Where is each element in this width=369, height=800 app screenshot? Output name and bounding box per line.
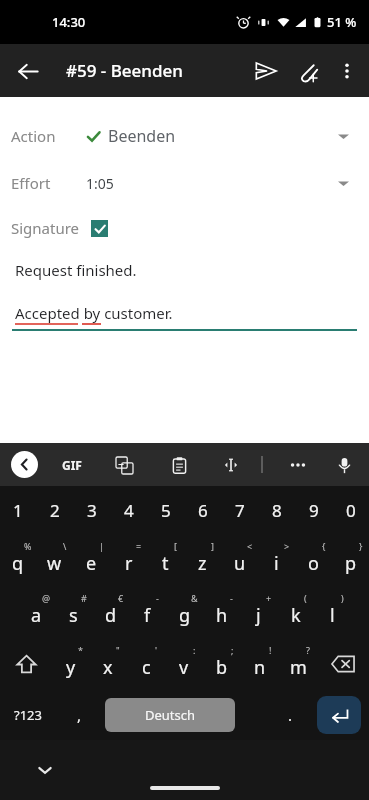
staticText: ( xyxy=(304,592,307,604)
button[interactable]: 5 xyxy=(147,486,184,534)
button[interactable]: t xyxy=(147,534,184,586)
staticText: z xyxy=(198,551,207,576)
staticText: p xyxy=(345,551,357,576)
button[interactable]: Backspace xyxy=(317,638,369,690)
staticText: 14:30 xyxy=(52,13,86,31)
button[interactable]: g xyxy=(166,586,203,638)
staticText: j xyxy=(256,603,261,628)
button[interactable]: Deutsch xyxy=(105,698,235,732)
button[interactable]: Text editing xyxy=(219,453,243,477)
button[interactable]: Voice input xyxy=(331,452,357,478)
button[interactable]: Shift xyxy=(0,638,52,690)
staticText: t xyxy=(162,551,169,576)
staticText: | xyxy=(99,540,104,552)
button[interactable]: p xyxy=(332,534,369,586)
button[interactable]: h xyxy=(203,586,240,638)
staticText: Action xyxy=(11,126,56,146)
button[interactable]: f xyxy=(129,586,166,638)
button[interactable]: b xyxy=(203,638,241,690)
button[interactable]: r xyxy=(110,534,147,586)
button[interactable]: Signature xyxy=(0,210,369,246)
button[interactable]: u xyxy=(221,534,258,586)
staticText: 2 xyxy=(50,499,60,522)
button[interactable]: z xyxy=(184,534,221,586)
staticText: [ xyxy=(174,540,177,552)
button[interactable]: c xyxy=(127,638,165,690)
staticText: < xyxy=(247,540,253,552)
staticText: b xyxy=(216,655,228,680)
button[interactable]: 4 xyxy=(110,486,147,534)
button[interactable]: Clipboard xyxy=(167,453,191,477)
staticText: @ xyxy=(42,592,51,604)
button[interactable]: 7 xyxy=(221,486,258,534)
staticText: . xyxy=(288,705,293,725)
button[interactable]: 6 xyxy=(184,486,221,534)
button[interactable]: m xyxy=(279,638,317,690)
button[interactable]: 1 xyxy=(0,486,36,534)
button[interactable]: Accepted by customer. xyxy=(0,296,369,330)
button[interactable]: q xyxy=(0,534,36,586)
button[interactable]: Effort xyxy=(0,162,369,204)
button[interactable]: d xyxy=(92,586,129,638)
staticText: % xyxy=(24,540,32,552)
staticText: Beenden xyxy=(108,125,176,147)
staticText: y xyxy=(66,655,76,680)
button[interactable]: y xyxy=(52,638,89,690)
button[interactable]: j xyxy=(240,586,277,638)
staticText: = xyxy=(136,540,142,552)
button[interactable]: o xyxy=(295,534,332,586)
staticText: 4 xyxy=(124,499,134,522)
button[interactable]: 2 xyxy=(36,486,73,534)
button[interactable]: i xyxy=(258,534,295,586)
staticText: ] xyxy=(211,540,214,552)
button[interactable]: Enter xyxy=(317,696,361,734)
button[interactable]: a xyxy=(18,586,55,638)
button[interactable]: 0 xyxy=(332,486,369,534)
staticText: ! xyxy=(269,644,272,656)
staticText: l xyxy=(330,603,335,628)
button[interactable]: s xyxy=(55,586,92,638)
button[interactable]: , xyxy=(62,698,96,732)
staticText: > xyxy=(284,540,290,552)
button[interactable]: Back xyxy=(11,451,38,478)
button[interactable]: Send xyxy=(245,50,287,92)
staticText: i xyxy=(274,551,279,576)
staticText: 8 xyxy=(272,499,282,522)
button[interactable]: k xyxy=(277,586,314,638)
staticText: , xyxy=(77,705,82,725)
button[interactable]: Emoji xyxy=(98,698,132,732)
button[interactable]: n xyxy=(241,638,279,690)
staticText: 1 xyxy=(13,499,23,522)
staticText: 0 xyxy=(346,499,356,522)
button[interactable]: 9 xyxy=(295,486,332,534)
button[interactable]: Translate xyxy=(112,453,136,477)
button[interactable]: Back xyxy=(8,51,48,91)
button[interactable]: . xyxy=(273,698,307,732)
staticText: 6 xyxy=(198,499,208,522)
staticText: w xyxy=(47,551,62,576)
button[interactable]: More options xyxy=(329,53,365,89)
button[interactable]: x xyxy=(89,638,127,690)
button[interactable]: l xyxy=(314,586,351,638)
button[interactable]: 3 xyxy=(73,486,110,534)
button[interactable]: Action xyxy=(0,115,369,157)
staticText: # xyxy=(81,592,87,604)
button[interactable]: Attach file xyxy=(287,50,329,92)
staticText: Deutsch xyxy=(145,706,196,724)
button[interactable]: w xyxy=(36,534,73,586)
staticText: d xyxy=(105,603,117,628)
staticText: GIF xyxy=(62,457,82,473)
staticText: - xyxy=(156,592,159,604)
staticText: - xyxy=(230,592,233,604)
staticText: 3 xyxy=(87,499,97,522)
staticText: n xyxy=(254,655,266,680)
button[interactable]: v xyxy=(165,638,203,690)
button[interactable]: More xyxy=(285,452,311,478)
staticText: g xyxy=(179,603,191,628)
button[interactable]: Hide keyboard xyxy=(30,755,60,785)
button[interactable]: 8 xyxy=(258,486,295,534)
staticText: Accepted by customer. xyxy=(15,303,173,323)
button[interactable]: e xyxy=(73,534,110,586)
staticText: + xyxy=(266,592,272,604)
button[interactable]: ?123 xyxy=(4,691,52,739)
